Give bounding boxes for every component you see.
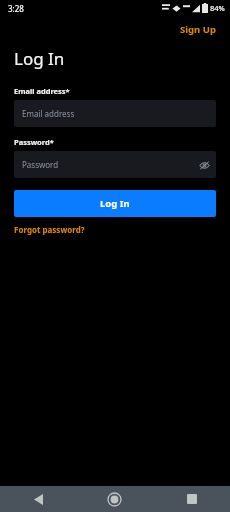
- staticText: Password: [22, 159, 59, 170]
- staticText: Log In: [100, 197, 130, 210]
- staticText: Email address: [22, 108, 75, 119]
- staticText: Email address*: [14, 86, 70, 96]
- button[interactable]: Log In: [14, 190, 216, 217]
- button[interactable]: Email address: [14, 100, 216, 127]
- button[interactable]: Sign Up: [166, 20, 230, 39]
- button[interactable]: Show password: [192, 153, 216, 177]
- staticText: Forgot password?: [14, 224, 85, 235]
- staticText: Password*: [14, 137, 54, 147]
- button[interactable]: Password: [14, 151, 216, 178]
- button[interactable]: Recent apps: [153, 486, 230, 512]
- staticText: Log In: [14, 47, 65, 70]
- button[interactable]: Forgot password?: [14, 224, 85, 235]
- staticText: 3:28: [8, 3, 24, 14]
- button[interactable]: Back: [0, 486, 76, 512]
- staticText: Sign Up: [180, 23, 216, 36]
- button[interactable]: Home: [76, 486, 153, 512]
- staticText: 84%: [210, 3, 225, 13]
